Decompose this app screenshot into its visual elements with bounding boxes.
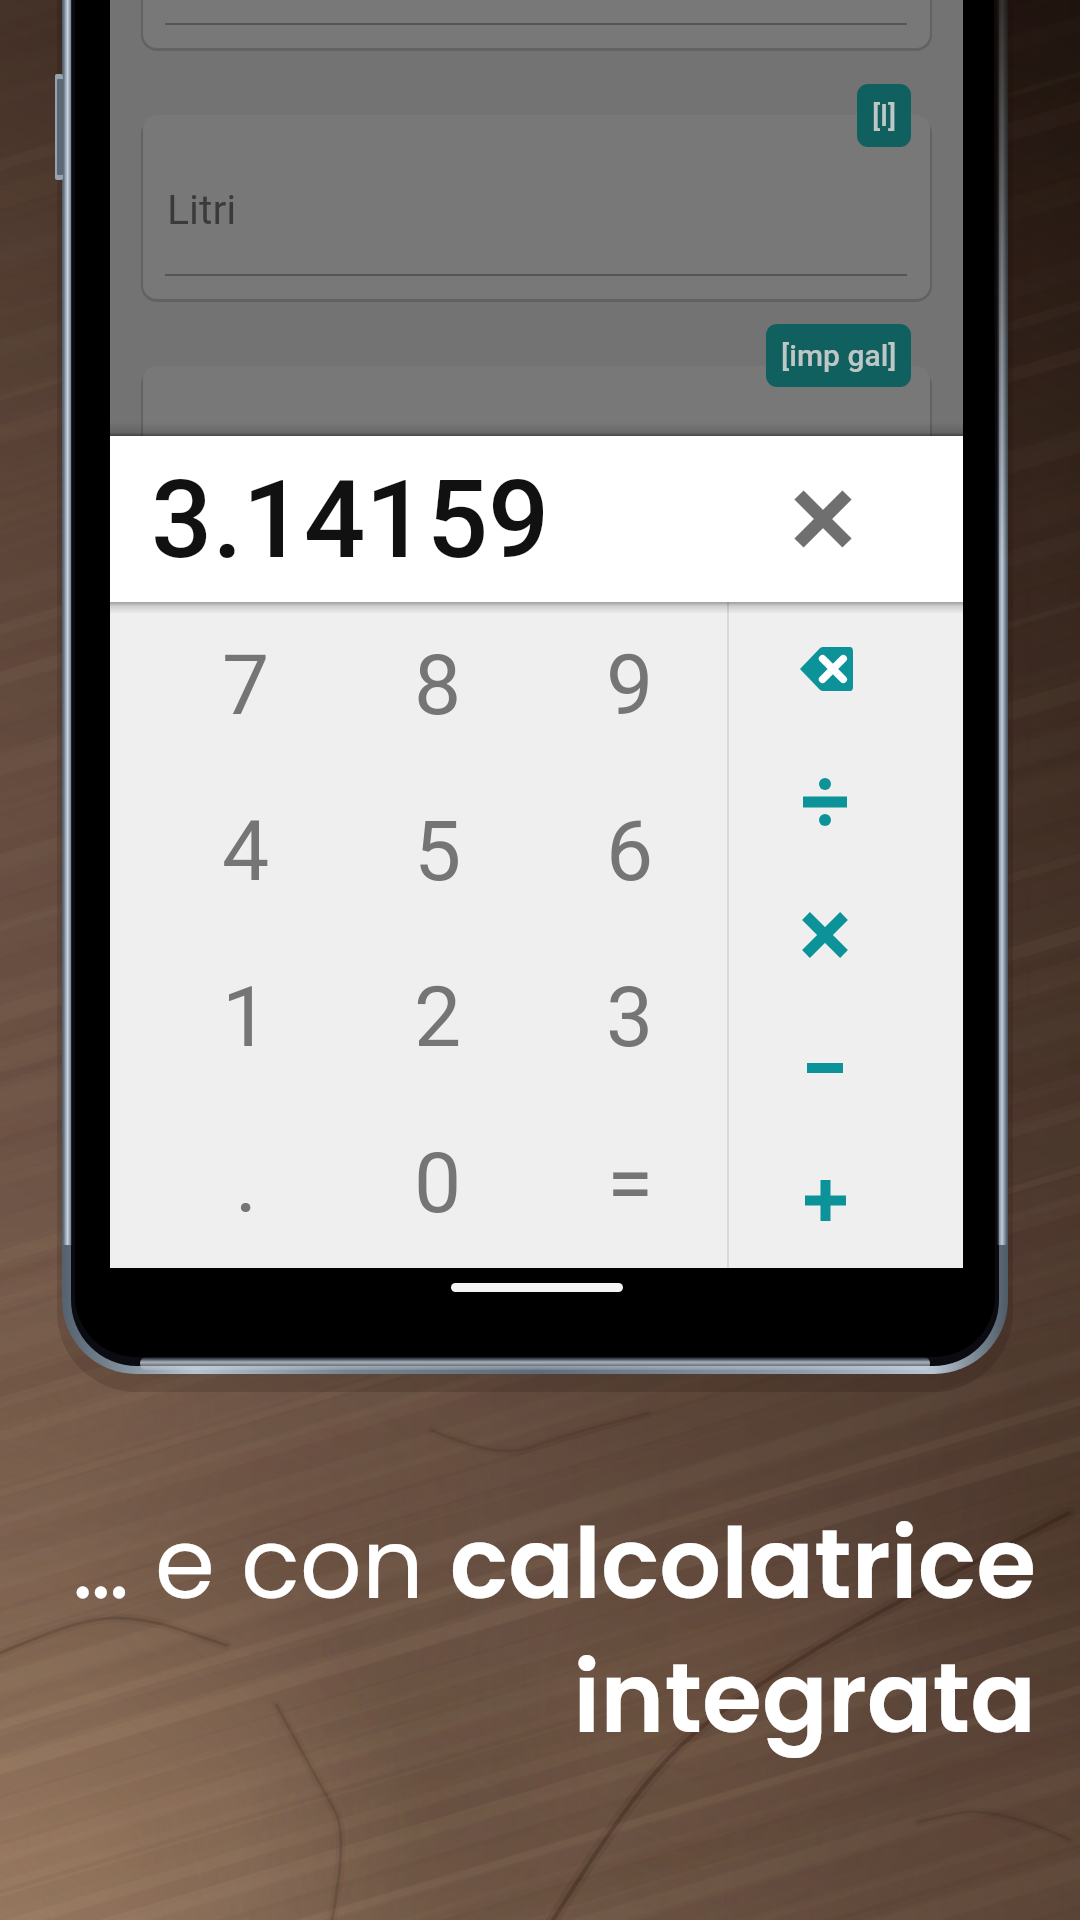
button[interactable]: 7 [150,602,342,768]
button[interactable] [143,366,930,550]
button[interactable]: [l] [857,84,911,147]
button[interactable]: 4 [150,768,342,934]
button[interactable]: 2 [342,934,534,1100]
staticText: 0 [414,1134,462,1232]
staticText: 8 [414,636,462,734]
button[interactable]: Backspace [729,602,963,735]
button[interactable]: 6 [534,768,726,934]
staticText: 7 [222,636,270,734]
staticText: 5 [414,802,462,900]
staticText: 3.14159 [151,457,550,584]
button[interactable]: Litri [143,115,930,299]
button[interactable]: . [150,1100,342,1266]
staticText: 6 [606,802,654,900]
button[interactable]: Chiudi calcolatrice [768,464,878,574]
staticText: 2 [414,968,462,1066]
staticText: 9 [606,636,654,734]
button[interactable]: Dividi [729,735,963,868]
staticText: … e con calcolatrice integrata [40,1496,1036,1766]
button[interactable]: 9 [534,602,726,768]
button[interactable]: 8 [342,602,534,768]
staticText: 3 [606,968,654,1066]
button[interactable]: = [534,1100,726,1266]
button[interactable]: Sottrai [729,1001,963,1134]
staticText: [imp gal] [781,338,897,373]
staticText: 1 [222,968,270,1066]
button[interactable]: [imp gal] [766,324,911,387]
staticText: Litri [167,186,237,234]
button[interactable] [143,0,930,48]
button[interactable]: 5 [342,768,534,934]
staticText: . [235,1134,258,1232]
button[interactable]: 0 [342,1100,534,1266]
button[interactable]: Somma [729,1134,963,1267]
button[interactable]: Moltiplica [729,868,963,1001]
staticText: [l] [872,98,897,133]
button[interactable]: 3 [534,934,726,1100]
staticText: = [607,1134,654,1232]
button[interactable]: 1 [150,934,342,1100]
staticText: 4 [222,802,270,900]
